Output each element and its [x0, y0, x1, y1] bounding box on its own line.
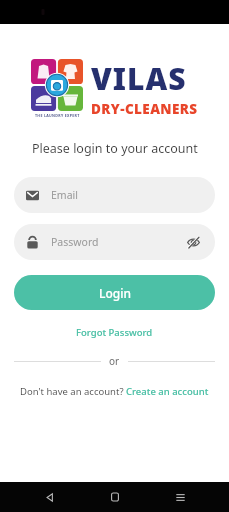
staticText: Password — [51, 235, 99, 249]
button[interactable]: Email — [14, 177, 215, 213]
staticText: DRY-CLEANERS — [91, 100, 198, 118]
button[interactable]: Password — [14, 224, 215, 260]
button[interactable]: Back — [32, 482, 66, 512]
staticText: Forgot Password — [76, 326, 153, 339]
staticText: or — [109, 354, 120, 368]
staticText: VILAS — [91, 58, 187, 99]
button[interactable]: Recent apps — [163, 482, 197, 512]
staticText: Don't have an account? — [20, 385, 126, 398]
staticText: Create an account — [126, 385, 209, 398]
button[interactable]: Create an account — [126, 385, 209, 398]
staticText: Login — [99, 285, 131, 301]
button[interactable]: Show password — [183, 232, 203, 252]
staticText: Please login to your account — [32, 140, 198, 157]
button[interactable]: Login — [14, 275, 215, 310]
staticText: THE LAUNDRY EXPERT — [35, 113, 80, 118]
button[interactable]: Forgot Password — [68, 323, 161, 342]
staticText: Email — [51, 188, 78, 202]
button[interactable]: Home — [98, 482, 132, 512]
